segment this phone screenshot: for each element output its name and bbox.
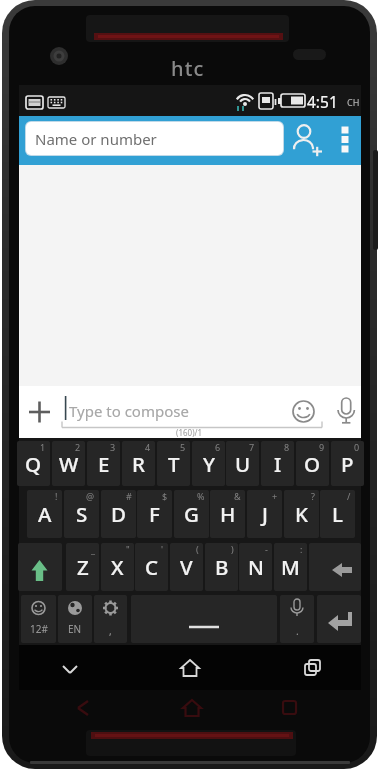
staticText: Name or number: [35, 129, 157, 149]
button[interactable]: [288, 122, 324, 159]
staticText: V: [180, 553, 193, 581]
staticText: G: [184, 500, 199, 528]
staticText: Q: [25, 450, 42, 478]
staticText: C: [145, 553, 159, 581]
button[interactable]: O: [296, 441, 329, 486]
staticText: U: [235, 450, 251, 478]
button[interactable]: [337, 122, 354, 159]
staticText: ,: [109, 624, 112, 638]
staticText: I: [274, 450, 282, 478]
button[interactable]: S: [64, 490, 99, 538]
staticText: M: [281, 553, 300, 581]
staticText: .: [296, 624, 299, 638]
staticText: CH: [347, 96, 360, 108]
button[interactable]: [18, 543, 62, 591]
button[interactable]: ,: [94, 595, 127, 643]
button[interactable]: [293, 650, 333, 686]
button[interactable]: V: [170, 543, 203, 591]
button[interactable]: Z: [66, 543, 99, 591]
button[interactable]: W: [52, 441, 85, 486]
staticText: %: [197, 490, 205, 502]
staticText: ): [231, 543, 234, 555]
button[interactable]: [290, 398, 317, 425]
button[interactable]: M: [274, 543, 307, 591]
button[interactable]: G: [174, 490, 209, 538]
staticText: J: [262, 500, 268, 528]
staticText: 9: [319, 441, 325, 453]
button[interactable]: D: [101, 490, 136, 538]
staticText: D: [111, 500, 126, 528]
button[interactable]: EN: [58, 595, 92, 643]
staticText: Y: [203, 450, 215, 478]
button[interactable]: K: [284, 490, 319, 538]
button[interactable]: B: [205, 543, 238, 591]
staticText: $: [162, 490, 168, 502]
button[interactable]: .: [280, 595, 314, 643]
staticText: (160)/1: [176, 427, 203, 438]
button[interactable]: [50, 650, 90, 686]
button[interactable]: C: [135, 543, 168, 591]
button[interactable]: P: [331, 441, 364, 486]
staticText: :: [300, 543, 303, 555]
staticText: 2: [75, 441, 81, 453]
staticText: Type to compose: [69, 401, 189, 421]
staticText: _: [91, 543, 95, 555]
button[interactable]: N: [239, 543, 272, 591]
button[interactable]: [309, 543, 361, 591]
staticText: F: [149, 500, 160, 528]
staticText: N: [248, 553, 264, 581]
staticText: 8: [284, 441, 290, 453]
button[interactable]: Name or number: [26, 122, 283, 155]
button[interactable]: 12#: [21, 595, 56, 643]
staticText: L: [332, 500, 343, 528]
staticText: 4:51: [307, 91, 338, 112]
button[interactable]: E: [87, 441, 120, 486]
staticText: @: [86, 490, 95, 502]
button[interactable]: [131, 595, 277, 643]
staticText: &: [234, 490, 241, 502]
staticText: ': [161, 543, 164, 555]
staticText: ?: [311, 490, 315, 502]
staticText: R: [132, 450, 145, 478]
staticText: (: [196, 543, 199, 555]
staticText: S: [76, 500, 88, 528]
staticText: B: [215, 553, 229, 581]
staticText: htc: [171, 55, 205, 81]
staticText: 3: [110, 441, 116, 453]
staticText: H: [220, 500, 236, 528]
button[interactable]: H: [210, 490, 245, 538]
staticText: P: [341, 450, 354, 478]
staticText: 0: [354, 441, 360, 453]
button[interactable]: [317, 595, 361, 643]
staticText: K: [295, 500, 308, 528]
staticText: 7: [249, 441, 255, 453]
staticText: O: [304, 450, 321, 478]
button[interactable]: Y: [192, 441, 225, 486]
button[interactable]: J: [247, 490, 282, 538]
button[interactable]: I: [261, 441, 294, 486]
staticText: X: [111, 553, 124, 581]
button[interactable]: A: [27, 490, 62, 538]
button[interactable]: L: [320, 490, 355, 538]
staticText: 4: [145, 441, 151, 453]
button[interactable]: F: [137, 490, 172, 538]
staticText: 6: [215, 441, 221, 453]
staticText: 5: [180, 441, 186, 453]
button[interactable]: X: [101, 543, 134, 591]
button[interactable]: Q: [17, 441, 50, 486]
staticText: !: [55, 490, 58, 502]
button[interactable]: U: [226, 441, 259, 486]
staticText: -: [265, 543, 268, 555]
button[interactable]: [25, 398, 55, 426]
staticText: W: [59, 450, 79, 478]
button[interactable]: R: [122, 441, 155, 486]
staticText: 12#: [30, 622, 48, 636]
staticText: EN: [68, 622, 82, 636]
staticText: 1: [40, 441, 46, 453]
staticText: Z: [77, 553, 89, 581]
staticText: ": [126, 543, 130, 555]
button[interactable]: T: [157, 441, 190, 486]
staticText: #: [126, 490, 132, 502]
button[interactable]: [170, 650, 210, 686]
button[interactable]: [333, 396, 360, 427]
